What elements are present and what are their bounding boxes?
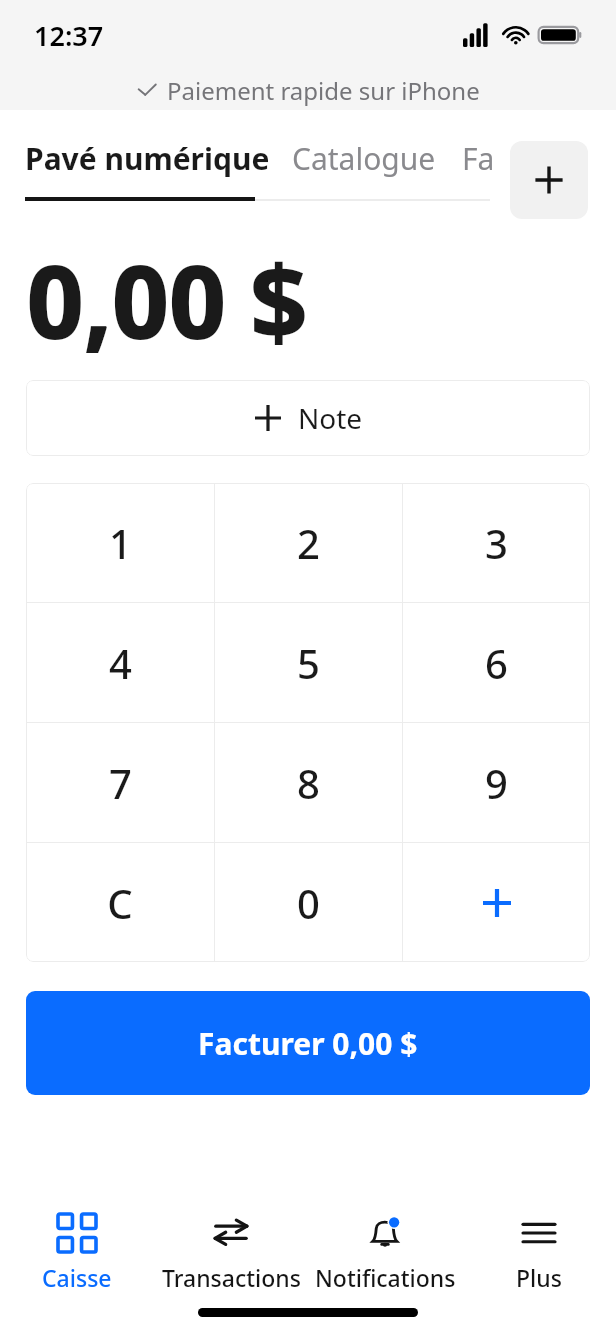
staticText: Transactions [162,1262,301,1293]
staticText: Catalogue [292,138,436,179]
staticText: Paiement rapide sur iPhone [167,74,480,107]
button[interactable]: 0 [215,843,402,962]
staticText: Caisse [42,1262,112,1293]
button[interactable]: Ajouter un article [403,843,590,962]
button[interactable]: 9 [403,723,590,842]
staticText: Facturer 0,00 $ [198,1023,418,1064]
button[interactable]: Transactions [154,1196,308,1296]
button[interactable]: Ajouter [510,141,588,219]
button[interactable]: Plus [462,1196,616,1296]
button[interactable]: Fa [462,138,495,179]
staticText: 3 [485,516,508,570]
button[interactable]: 6 [403,603,590,722]
other: Ajouter un article [481,887,513,919]
staticText: 0 [297,876,320,930]
button[interactable]: 2 [215,483,402,602]
button[interactable]: 8 [215,723,402,842]
staticText: Fa [462,138,495,179]
button[interactable]: Paiement rapide sur iPhone [0,70,616,110]
button[interactable]: Notifications [308,1196,462,1296]
staticText: 8 [297,756,320,810]
button[interactable]: Facturer 0,00 $ [26,991,590,1095]
staticText: 0,00 $ [26,231,307,369]
button[interactable]: 1 [26,483,214,602]
staticText: 6 [485,636,508,690]
staticText: 7 [109,756,132,810]
button[interactable]: 5 [215,603,402,722]
staticText: 2 [297,516,320,570]
button[interactable]: 4 [26,603,214,722]
staticText: Plus [516,1262,562,1293]
button[interactable]: C [26,843,214,962]
button[interactable]: 3 [403,483,590,602]
button[interactable]: Caisse [0,1196,154,1296]
staticText: 12:37 [34,17,104,54]
button[interactable]: Pavé numérique [0,138,280,179]
staticText: 9 [485,756,508,810]
button[interactable]: Note [26,380,590,456]
staticText: 1 [109,516,132,570]
staticText: Note [298,399,363,437]
staticText: C [107,876,133,930]
button[interactable]: Catalogue [292,138,436,179]
staticText: 5 [297,636,320,690]
button[interactable]: 7 [26,723,214,842]
staticText: 4 [109,636,132,690]
staticText: Notifications [315,1262,456,1293]
staticText: Pavé numérique [25,138,270,179]
